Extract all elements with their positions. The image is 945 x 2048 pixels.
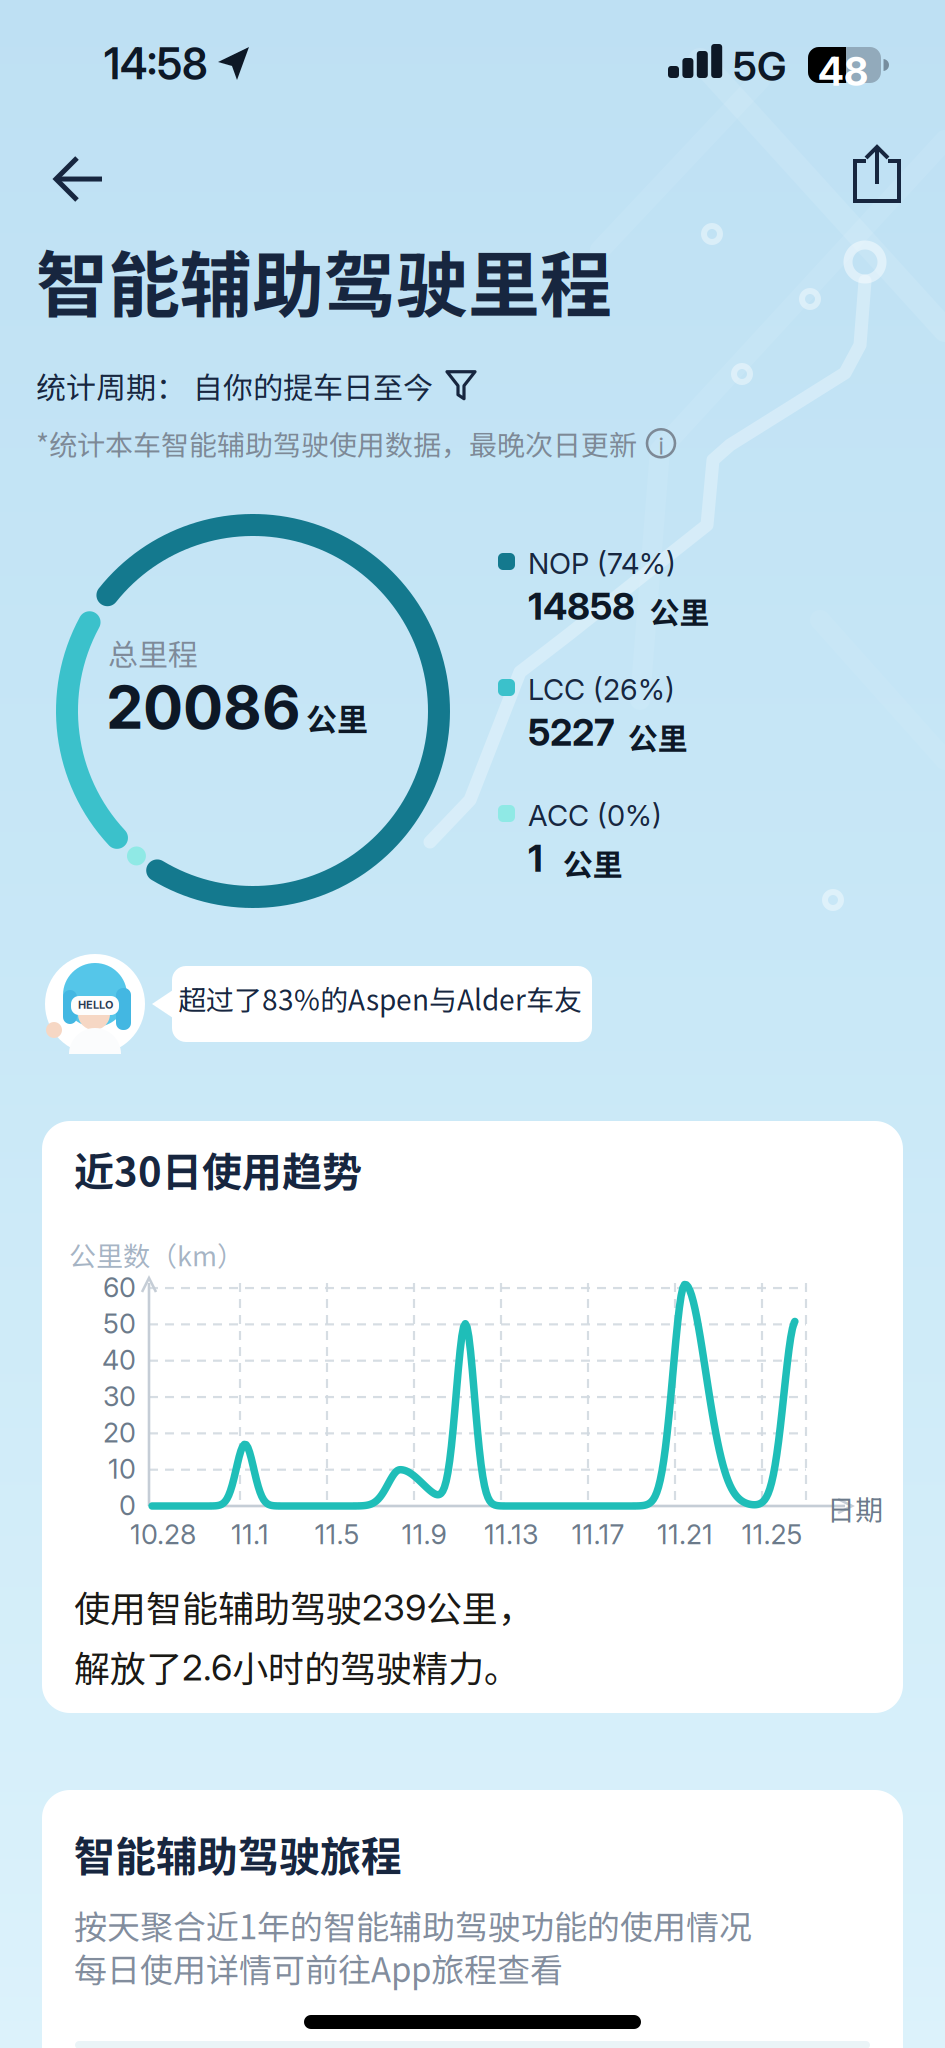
staticText: 11.5 <box>314 1518 359 1551</box>
staticText: 日期 <box>827 1488 883 1528</box>
staticText: 公里 <box>628 715 688 758</box>
staticText: 公里 <box>563 841 623 884</box>
staticText: HELLO <box>78 998 113 1011</box>
staticText: *统计本车智能辅助驾驶使用数据，最晚次日更新 <box>36 423 637 463</box>
staticText: 超过了83%的Aspen与Alder车友 <box>178 978 582 1018</box>
staticText: LCC (26%) <box>528 672 675 707</box>
staticText: 11.13 <box>484 1518 538 1551</box>
staticText: 20086 <box>106 671 301 743</box>
staticText: 解放了2.6小时的驾驶精力。 <box>74 1641 520 1692</box>
staticText: 11.17 <box>571 1518 624 1551</box>
staticText: 50 <box>103 1307 136 1340</box>
staticText: i <box>658 432 663 460</box>
staticText: 14858 <box>528 584 635 629</box>
staticText: 10.28 <box>130 1518 196 1551</box>
staticText: 使用智能辅助驾驶239公里， <box>74 1581 534 1632</box>
staticText: 11.9 <box>401 1518 446 1551</box>
staticText: ACC (0%) <box>528 798 662 833</box>
staticText: 10 <box>108 1453 136 1485</box>
button[interactable]: 说明 <box>36 423 677 463</box>
button[interactable]: Share <box>840 136 916 212</box>
staticText: 0 <box>119 1489 136 1522</box>
staticText: 公里数（km） <box>69 1235 244 1274</box>
staticText: 14:58 <box>104 38 208 89</box>
staticText: 公里 <box>649 589 709 632</box>
staticText: 5227 <box>528 710 615 755</box>
staticText: NOP (74%) <box>528 546 676 581</box>
staticText: 公里 <box>306 695 368 740</box>
staticText: 11.21 <box>657 1518 713 1551</box>
staticText: 11.1 <box>231 1518 269 1551</box>
staticText: 11.25 <box>741 1518 802 1551</box>
staticText: 48 <box>818 48 868 95</box>
staticText: 30 <box>103 1380 136 1413</box>
staticText: 每日使用详情可前往App旅程查看 <box>74 1944 563 1992</box>
staticText: 统计周期： 自你的提车日至今 <box>36 364 433 407</box>
staticText: 近30日使用趋势 <box>74 1140 362 1198</box>
staticText: 智能辅助驾驶里程 <box>36 228 612 332</box>
staticText: 60 <box>103 1271 136 1304</box>
staticText: 20 <box>103 1416 136 1449</box>
staticText: 1 <box>528 836 543 881</box>
staticText: 按天聚合近1年的智能辅助驾驶功能的使用情况 <box>74 1901 752 1949</box>
staticText: 智能辅助驾驶旅程 <box>74 1824 402 1883</box>
staticText: 5G <box>733 42 786 90</box>
staticText: 40 <box>102 1344 136 1376</box>
button[interactable]: 统计周期筛选 <box>36 364 477 407</box>
staticText: 总里程 <box>108 631 198 674</box>
button[interactable]: Back <box>36 142 112 218</box>
